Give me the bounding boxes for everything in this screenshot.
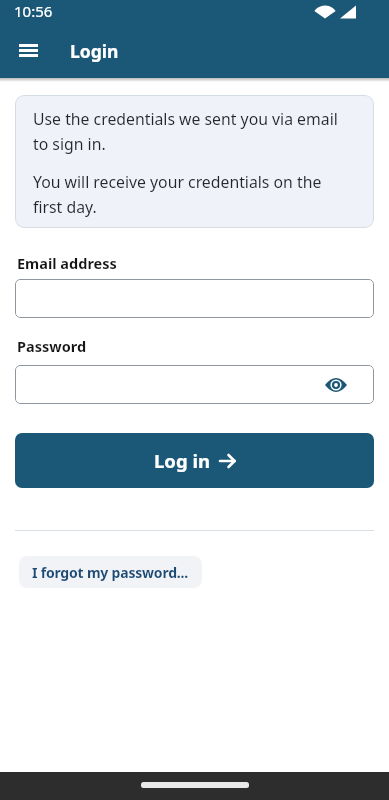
staticText: Password bbox=[17, 336, 87, 356]
button[interactable]: Log in bbox=[15, 433, 374, 488]
button[interactable]: I forgot my password... bbox=[19, 556, 202, 588]
staticText: 10:56 bbox=[14, 1, 53, 21]
staticText: You will receive your credentials on the… bbox=[33, 171, 322, 217]
button[interactable] bbox=[15, 365, 374, 404]
staticText: Login bbox=[70, 39, 119, 63]
staticText: Use the credentials we sent you via emai… bbox=[33, 108, 338, 154]
button[interactable] bbox=[324, 373, 348, 397]
button[interactable] bbox=[15, 279, 374, 318]
button[interactable] bbox=[6, 29, 50, 73]
staticText: Log in bbox=[154, 448, 210, 473]
staticText: I forgot my password... bbox=[32, 563, 189, 582]
staticText: Email address bbox=[17, 253, 117, 273]
